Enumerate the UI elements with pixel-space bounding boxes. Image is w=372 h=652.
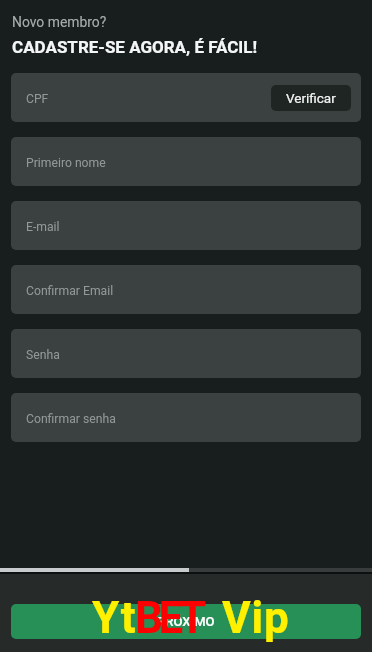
staticText: PRÓXIMO bbox=[157, 614, 215, 629]
button[interactable]: Senha bbox=[11, 329, 361, 378]
staticText: CADASTRE-SE AGORA, É FÁCIL! bbox=[12, 37, 258, 57]
staticText: Novo membro? bbox=[12, 14, 107, 30]
button[interactable]: Confirmar senha bbox=[11, 393, 361, 442]
button[interactable]: E-mail bbox=[11, 201, 361, 250]
staticText: Senha bbox=[26, 348, 60, 362]
button[interactable]: Primeiro nome bbox=[11, 137, 361, 186]
staticText: Primeiro nome bbox=[26, 156, 106, 170]
staticText: BET bbox=[135, 592, 202, 644]
staticText: Confirmar Email bbox=[26, 284, 114, 298]
other: YtBET Vip watermark bbox=[0, 0, 372, 652]
button[interactable]: CPF bbox=[11, 73, 361, 122]
staticText: Confirmar senha bbox=[26, 412, 116, 426]
staticText: E-mail bbox=[26, 220, 60, 234]
button[interactable]: PRÓXIMO bbox=[11, 604, 361, 639]
staticText: CPF bbox=[26, 92, 49, 106]
staticText: Vip bbox=[222, 592, 290, 644]
button[interactable]: Confirmar Email bbox=[11, 265, 361, 314]
button[interactable]: Verificar bbox=[271, 85, 351, 111]
staticText: Verificar bbox=[286, 90, 336, 106]
staticText: Yt bbox=[92, 592, 138, 644]
